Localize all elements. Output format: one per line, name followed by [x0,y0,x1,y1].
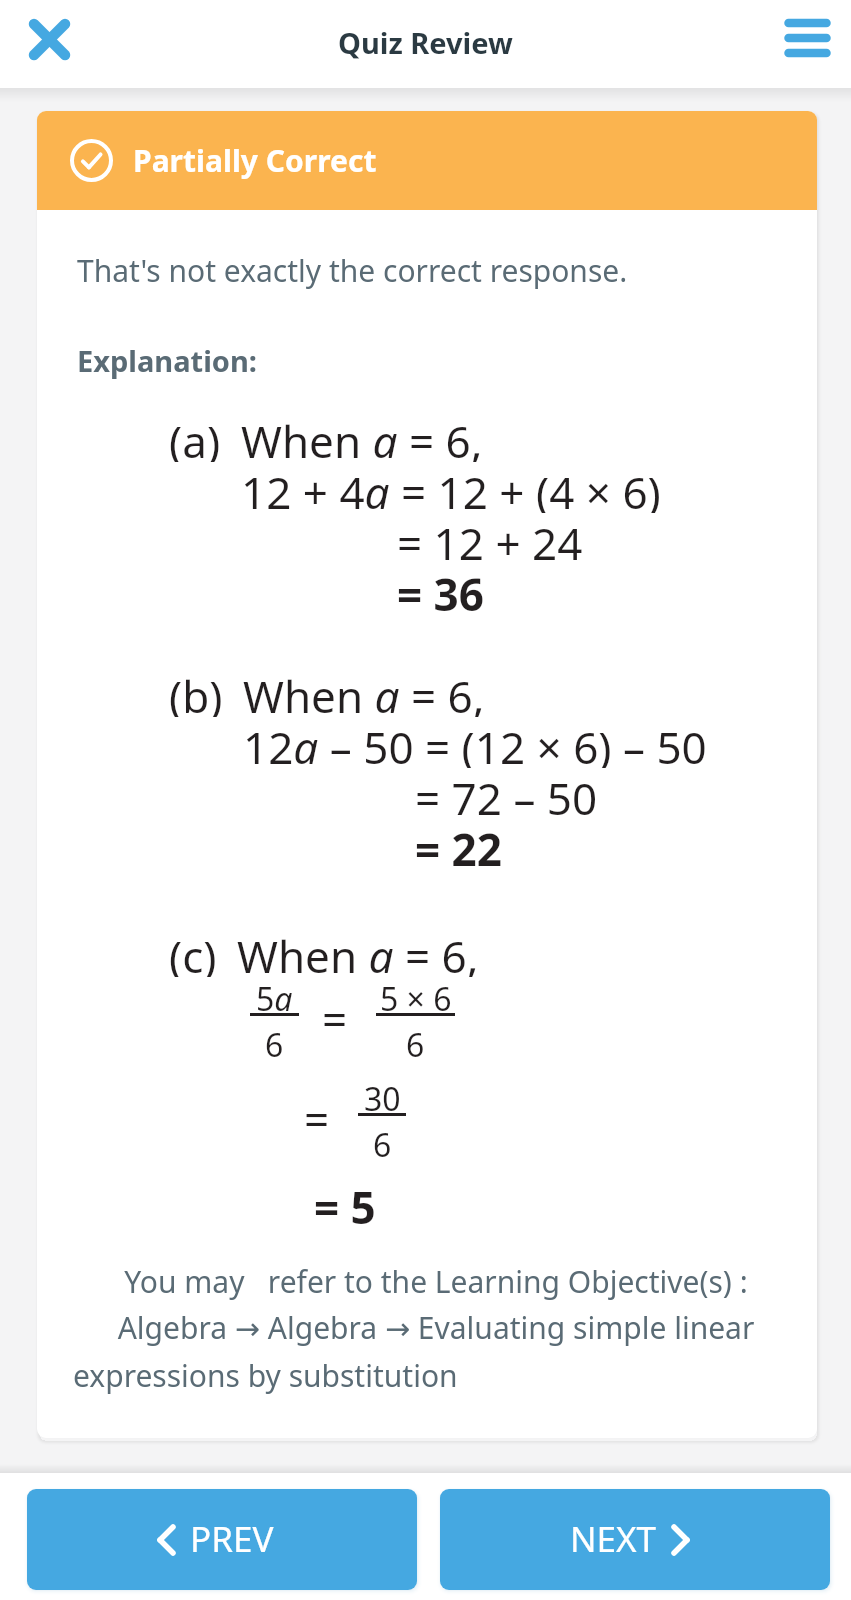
staticText: = 12 + 24 [397,513,583,564]
staticText: = [322,989,348,1049]
staticText: 5a [256,977,293,1021]
staticText: 30 [364,1077,401,1121]
staticText: expressions by substitution [73,1355,791,1396]
staticText: 12a – 50 = (12 × 6) – 50 [243,717,707,768]
staticText: (a) [169,411,221,462]
button[interactable]: NEXT [440,1489,830,1590]
staticText: When a = 6, [241,411,483,462]
staticText: NEXT [570,1515,657,1563]
button[interactable]: Menu [769,0,845,76]
staticText: (b) [169,666,223,717]
button[interactable]: PREV [27,1489,417,1590]
staticText: That's not exactly the correct response. [77,250,628,291]
staticText: 12 + 4a = 12 + (4 × 6) [241,462,661,513]
button[interactable]: Close [11,1,87,77]
staticText: = 36 [397,564,484,615]
staticText: = 5 [314,1177,376,1237]
staticText: = 72 – 50 [415,768,598,819]
staticText: 6 [406,1023,425,1067]
staticText: = 22 [415,819,502,870]
staticText: PREV [190,1515,274,1563]
staticText: Quiz Review [338,23,513,62]
staticText: (c) [169,926,217,977]
staticText: 6 [265,1023,284,1067]
staticText: 5 × 6 [380,977,452,1021]
staticText: 6 [373,1123,392,1167]
staticText: When a = 6, [243,666,485,717]
staticText: = [304,1089,330,1149]
staticText: Explanation: [77,341,257,380]
staticText: When a = 6, [237,926,479,977]
staticText: You may refer to the Learning Objective(… [77,1261,795,1348]
staticText: Partially Correct [133,140,377,181]
